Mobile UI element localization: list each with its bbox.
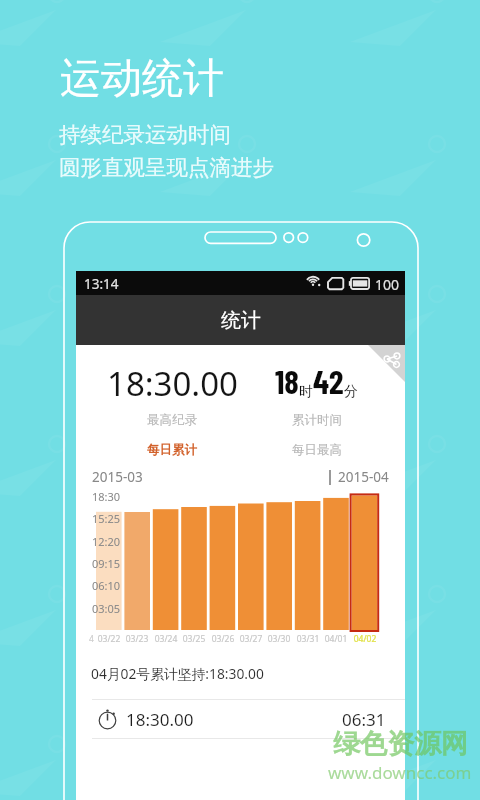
staticText: 4 — [89, 633, 94, 645]
staticText: 03/26 — [205, 633, 241, 645]
staticText: 15:25 — [92, 511, 121, 526]
staticText: 12:20 — [92, 534, 121, 549]
staticText: 06:31 — [342, 708, 386, 731]
staticText: 2015-04 — [338, 468, 389, 486]
staticText: 03/30 — [261, 633, 297, 645]
staticText: 2015-03 — [92, 468, 143, 486]
staticText: 每日累计 — [147, 442, 197, 458]
staticText: 04月02号累计坚持:18:30.00 — [91, 664, 264, 683]
staticText: 时 — [299, 383, 313, 401]
staticText: 04/02 — [347, 633, 383, 645]
staticText: 03:05 — [92, 601, 121, 616]
staticText: 18:30.00 — [126, 708, 194, 731]
staticText: 04/01 — [318, 633, 354, 645]
staticText: 绿色资源网 — [333, 727, 468, 761]
staticText: 分 — [344, 383, 358, 401]
button[interactable]: Share — [368, 345, 405, 382]
staticText: 03/22 — [91, 633, 127, 645]
staticText: 03/24 — [148, 633, 184, 645]
staticText: 42 — [313, 361, 344, 401]
staticText: 运动统计 — [60, 53, 224, 105]
staticText: 累计时间 — [292, 412, 342, 428]
staticText: 最高纪录 — [147, 412, 197, 428]
staticText: 03/27 — [233, 633, 269, 645]
staticText: 统计 — [221, 308, 261, 333]
staticText: 18:30.00 — [107, 361, 238, 406]
staticText: 18:30 — [92, 489, 121, 504]
button[interactable]: 18:30.00 — [76, 700, 405, 738]
staticText: 09:15 — [92, 556, 121, 571]
staticText: 13:14 — [84, 275, 119, 293]
staticText: 03/31 — [290, 633, 326, 645]
staticText: 18 — [275, 361, 299, 401]
staticText: www.downcc.com — [328, 761, 472, 784]
staticText: 每日最高 — [292, 442, 342, 458]
staticText: 持续纪录运动时间 — [59, 121, 231, 148]
staticText: 03/25 — [176, 633, 212, 645]
staticText: 100 — [375, 275, 400, 294]
staticText: 06:10 — [92, 578, 121, 593]
staticText: 圆形直观呈现点滴进步 — [59, 154, 274, 181]
staticText: 03/23 — [119, 633, 155, 645]
